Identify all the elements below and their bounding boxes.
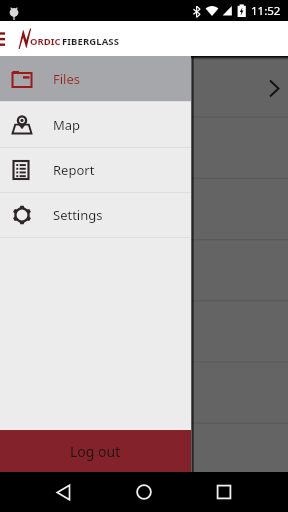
staticText: Map [53, 116, 81, 134]
button[interactable]: Back [44, 472, 84, 512]
staticText: Log out [70, 442, 121, 461]
button[interactable]: Settings [0, 193, 191, 237]
button[interactable]: Log out [0, 430, 191, 472]
button[interactable]: Home [124, 472, 164, 512]
staticText: Report [53, 161, 95, 179]
button[interactable]: Report [0, 148, 191, 192]
button[interactable]: Recent apps [204, 472, 244, 512]
staticText: Files [53, 70, 81, 88]
staticText: Settings [53, 206, 103, 224]
button[interactable]: Map [0, 102, 191, 147]
staticText: 11:52 [251, 3, 281, 19]
staticText: ORDIC [30, 35, 61, 48]
button[interactable]: Open navigation drawer [0, 21, 7, 56]
button[interactable] [0, 56, 288, 472]
button[interactable]: Files [0, 56, 191, 101]
staticText: FIBERGLASS [62, 35, 120, 48]
